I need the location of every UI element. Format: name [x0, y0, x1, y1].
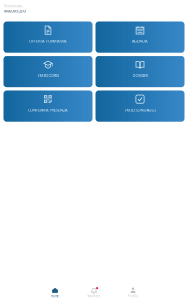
button[interactable]: DOSSIER	[95, 56, 184, 87]
staticText: Notifiche	[87, 294, 100, 298]
staticText: AGENDA	[132, 38, 148, 44]
staticText: Benvenuto,	[4, 3, 23, 8]
staticText: MAURIZIO	[4, 8, 26, 14]
staticText: CONFERMA PRESENZA	[28, 107, 68, 113]
staticText: DOSSIER	[132, 73, 147, 78]
button[interactable]: Home	[39, 288, 70, 298]
button[interactable]: I MIEI SONDAGGI	[95, 91, 184, 122]
staticText: I MIEI SONDAGGI	[124, 107, 155, 113]
staticText: Home	[51, 294, 59, 298]
staticText: I MIEI CORSI	[37, 73, 58, 78]
staticText: Profilo	[128, 294, 138, 298]
button[interactable]: Notifiche	[78, 288, 109, 298]
button[interactable]: I MIEI CORSI	[3, 56, 92, 87]
button[interactable]: OFFERTA FORMATIVA	[3, 22, 92, 53]
button[interactable]: Profilo	[117, 288, 148, 298]
button[interactable]: CONFERMA PRESENZA	[3, 91, 92, 122]
button[interactable]: AGENDA	[95, 22, 184, 53]
staticText: OFFERTA FORMATIVA	[29, 38, 67, 44]
